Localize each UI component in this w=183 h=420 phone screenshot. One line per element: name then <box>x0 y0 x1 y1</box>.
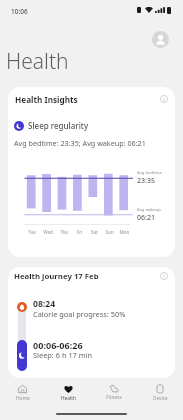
staticText: Health journey 17 Feb <box>14 271 99 282</box>
staticText: 08:24 <box>33 298 56 310</box>
staticText: 23:35 <box>137 176 155 186</box>
button[interactable]: Profile <box>152 31 169 48</box>
staticText: 00:06-06:26 <box>33 339 83 351</box>
staticText: Mon <box>117 229 132 235</box>
staticText: Sun <box>102 229 117 235</box>
staticText: Health <box>61 395 76 402</box>
staticText: Wed <box>40 229 56 235</box>
staticText: Sat <box>87 229 102 235</box>
button[interactable]: Home <box>0 378 45 408</box>
staticText: Avg bedtime: 23:35; Avg wakeup: 06:21 <box>14 138 146 148</box>
button[interactable]: Info <box>158 270 170 282</box>
button[interactable]: Fitness <box>91 378 137 408</box>
staticText: Avg bedtime <box>137 170 162 176</box>
staticText: Health <box>6 47 69 76</box>
staticText: 10:06 <box>11 7 28 16</box>
staticText: Calorie goal progress: 50% <box>33 309 126 319</box>
staticText: Sleep: 6 h 17 min <box>33 350 93 360</box>
staticText: Sleep regularity <box>28 120 89 131</box>
staticText: Tue <box>24 229 40 235</box>
staticText: Fitness <box>106 394 122 401</box>
staticText: Device <box>153 395 168 402</box>
staticText: Thu <box>56 229 72 235</box>
button[interactable]: Health <box>45 378 91 408</box>
staticText: Health Insights <box>15 94 78 105</box>
button[interactable]: Info <box>158 93 170 105</box>
button[interactable]: Device <box>137 378 183 408</box>
staticText: Avg wakeup <box>137 207 161 213</box>
staticText: 06:21 <box>137 213 155 223</box>
staticText: Home <box>16 395 30 402</box>
staticText: Fri <box>72 229 87 235</box>
